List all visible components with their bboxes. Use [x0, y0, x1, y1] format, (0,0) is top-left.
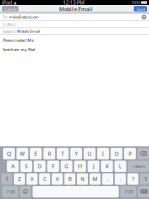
button[interactable]: .?123: [120, 186, 136, 197]
staticText: U: [88, 150, 92, 157]
staticText: ,: [107, 175, 108, 183]
button[interactable]: E: [30, 148, 42, 159]
staticText: I: [102, 150, 104, 157]
button[interactable]: D: [34, 161, 46, 172]
button[interactable]: B: [64, 173, 75, 185]
button[interactable]: N: [77, 173, 88, 185]
staticText: T: [61, 150, 64, 157]
staticText: ☺: [22, 189, 28, 195]
button[interactable]: L: [114, 161, 126, 172]
button[interactable]: Q: [3, 148, 15, 159]
button[interactable]: ⌫: [137, 148, 149, 159]
button[interactable]: [33, 186, 119, 197]
button[interactable]: Z: [14, 173, 25, 185]
staticText: +: [142, 13, 145, 21]
staticText: ▲: [13, 0, 16, 5]
staticText: A: [11, 163, 14, 170]
staticText: .: [120, 175, 121, 183]
staticText: P: [128, 150, 131, 157]
staticText: F: [52, 163, 55, 170]
button[interactable]: ,: [102, 173, 113, 185]
button[interactable]: Send: [134, 6, 147, 12]
button[interactable]: ⌨: [138, 186, 149, 197]
staticText: R: [48, 150, 51, 157]
staticText: Please contact Me.: [2, 37, 34, 43]
button[interactable]: C: [39, 173, 50, 185]
button[interactable]: I: [97, 148, 109, 159]
staticText: G: [65, 163, 69, 170]
staticText: L: [119, 163, 122, 170]
staticText: Y: [75, 150, 78, 157]
button[interactable]: M: [90, 173, 101, 185]
staticText: Sent from my iPad: [2, 47, 34, 52]
button[interactable]: ☺: [20, 186, 31, 197]
button[interactable]: X: [26, 173, 37, 185]
button[interactable]: Cancel: [2, 6, 18, 12]
staticText: Send: [136, 6, 144, 12]
button[interactable]: P: [124, 148, 136, 159]
button[interactable]: return: [128, 161, 149, 172]
staticText: iPad: [2, 0, 12, 6]
staticText: M: [93, 175, 98, 183]
button[interactable]: U: [84, 148, 95, 159]
staticText: S: [25, 163, 28, 170]
staticText: B: [68, 175, 71, 183]
staticText: 100%: [131, 0, 140, 5]
button[interactable]: Add recipient: [141, 14, 146, 19]
staticText: H: [78, 163, 82, 170]
staticText: mike@abcd.com: [9, 14, 39, 20]
staticText: X: [30, 175, 33, 183]
staticText: V: [56, 175, 59, 183]
staticText: O: [114, 150, 118, 157]
staticText: N: [80, 175, 84, 183]
button[interactable]: G: [61, 161, 72, 172]
staticText: C: [43, 175, 46, 183]
staticText: ?: [132, 175, 134, 183]
staticText: To:: [2, 14, 7, 20]
staticText: .?123: [6, 189, 15, 194]
staticText: Mobile Email: [59, 6, 93, 13]
button[interactable]: H: [74, 161, 86, 172]
button[interactable]: K: [101, 161, 113, 172]
staticText: Subject:: [2, 28, 15, 34]
staticText: Mobile Email: [17, 28, 40, 34]
button[interactable]: S: [20, 161, 32, 172]
button[interactable]: ⇧: [140, 173, 149, 185]
button[interactable]: Y: [70, 148, 82, 159]
button[interactable]: .: [115, 173, 126, 185]
staticText: return: [133, 164, 144, 169]
button[interactable]: W: [16, 148, 28, 159]
button[interactable]: T: [57, 148, 69, 159]
staticText: D: [38, 163, 42, 170]
staticText: Z: [18, 175, 21, 183]
staticText: 12:13 PM: [63, 0, 85, 6]
button[interactable]: ⇧: [1, 173, 12, 185]
staticText: J: [93, 163, 94, 170]
staticText: Cc/Bcc:: [2, 21, 16, 27]
button[interactable]: .?123: [2, 186, 18, 197]
staticText: W: [20, 150, 25, 157]
staticText: ⇧: [143, 176, 147, 182]
staticText: ⌨: [140, 189, 148, 195]
staticText: K: [105, 163, 108, 170]
button[interactable]: R: [43, 148, 55, 159]
staticText: ⇧: [5, 176, 9, 182]
staticText: .?123: [124, 189, 133, 194]
staticText: Cancel: [4, 6, 16, 12]
button[interactable]: O: [111, 148, 122, 159]
button[interactable]: F: [47, 161, 59, 172]
button[interactable]: ?: [127, 173, 138, 185]
button[interactable]: J: [88, 161, 99, 172]
staticText: E: [34, 150, 37, 157]
staticText: Q: [7, 150, 11, 157]
staticText: ⌫: [139, 151, 147, 157]
button[interactable]: V: [52, 173, 63, 185]
button[interactable]: A: [7, 161, 19, 172]
